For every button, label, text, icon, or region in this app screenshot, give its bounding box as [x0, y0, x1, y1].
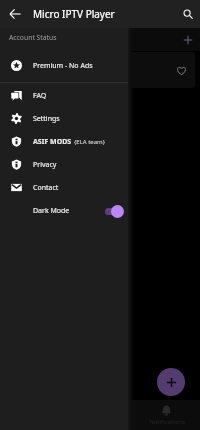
button[interactable]: FAQ [0, 84, 128, 107]
button[interactable]: Premium - No Ads [0, 54, 128, 77]
staticText: {ELA team} [74, 138, 105, 146]
button[interactable]: Privacy [0, 153, 128, 176]
staticText: Account Status [9, 33, 57, 42]
staticText: Plus [9, 65, 25, 76]
button[interactable]: Contact [0, 176, 128, 199]
staticText: Privacy [33, 160, 57, 170]
staticText: Settings [33, 114, 60, 124]
button[interactable]: Favorite [173, 62, 189, 78]
button[interactable]: Notifications [133, 400, 200, 430]
button[interactable]: Back [0, 0, 29, 28]
staticText: Dark Mode [33, 206, 70, 216]
staticText: Micro IPTV Player [33, 7, 115, 21]
button[interactable]: Favourites [66, 400, 133, 430]
button[interactable]: Add channel [157, 368, 185, 396]
button[interactable]: Plus [5, 52, 195, 88]
staticText: ASIF MODS [33, 137, 72, 147]
button[interactable]: Search [176, 0, 200, 28]
button[interactable]: Settings [0, 107, 128, 130]
button[interactable] [0, 28, 200, 430]
button[interactable]: Dark Mode [0, 199, 128, 222]
staticText: Premium - No Ads [33, 61, 93, 71]
button[interactable]: Add playlist [180, 32, 196, 48]
staticText: FAQ [33, 91, 47, 101]
staticText: Contact [33, 183, 59, 193]
staticText: Notifications [149, 418, 185, 426]
button[interactable]: ASIF MODS [0, 130, 128, 153]
